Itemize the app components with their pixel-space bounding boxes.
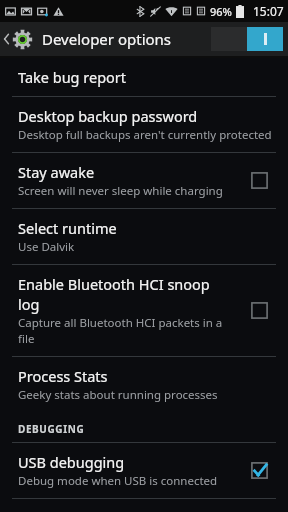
button[interactable]: Process Stats: [0, 357, 288, 412]
staticText: Desktop backup password: [18, 106, 198, 126]
button[interactable]: Desktop backup password: [0, 97, 288, 152]
staticText: Take bug report: [18, 67, 127, 87]
button[interactable]: Stay awake: [0, 153, 288, 208]
button[interactable]: Toggle developer options: [211, 27, 288, 51]
button[interactable]: Unchecked: [250, 171, 269, 190]
staticText: Capture all Bluetooth HCI packets in a f…: [18, 315, 234, 347]
button[interactable]: Checked: [250, 461, 269, 480]
staticText: Process Stats: [18, 366, 108, 386]
staticText: Select runtime: [18, 218, 117, 238]
staticText: Enable Bluetooth HCI snoop log: [18, 274, 234, 314]
button[interactable]: Enable Bluetooth HCI snoop log: [0, 265, 288, 356]
staticText: Desktop full backups aren't currently pr…: [18, 127, 272, 143]
staticText: Stay awake: [18, 162, 95, 182]
button[interactable]: Navigate up: [0, 22, 37, 56]
staticText: 15:07: [253, 3, 284, 19]
staticText: Developer options: [42, 29, 172, 49]
staticText: Debug mode when USB is connected: [18, 473, 218, 489]
staticText: Geeky stats about running processes: [18, 387, 218, 403]
button[interactable]: Unchecked: [250, 301, 269, 320]
button[interactable]: Select runtime: [0, 209, 288, 264]
staticText: DEBUGGING: [18, 422, 85, 436]
staticText: Use Dalvik: [18, 239, 75, 255]
staticText: Screen will never sleep while charging: [18, 183, 223, 199]
button[interactable]: Take bug report: [0, 58, 288, 96]
staticText: USB debugging: [18, 452, 125, 472]
button[interactable]: USB debugging: [0, 443, 288, 498]
staticText: 96%: [210, 4, 232, 19]
